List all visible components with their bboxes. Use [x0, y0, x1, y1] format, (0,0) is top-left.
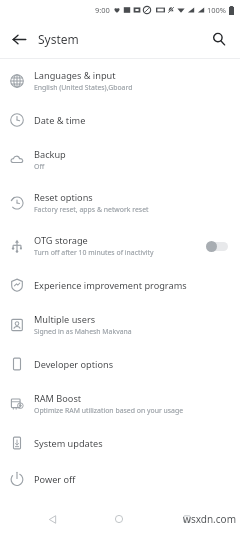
button[interactable]: Developer options	[0, 346, 240, 382]
staticText: Reset options	[34, 191, 93, 204]
staticText: Languages & input	[34, 69, 116, 82]
button[interactable]: OTG storage toggle	[206, 238, 230, 254]
button[interactable]: Experience improvement programs	[0, 267, 240, 303]
button[interactable]: Languages & input	[0, 59, 240, 102]
button[interactable]: Date & time	[0, 102, 240, 138]
button[interactable]: Home	[104, 505, 134, 533]
staticText: System updates	[34, 437, 103, 450]
staticText: English (United States),Gboard	[34, 83, 133, 92]
staticText: Experience improvement programs	[34, 279, 187, 292]
staticText: Optimize RAM utilization based on your u…	[34, 406, 184, 415]
staticText: RAM Boost	[34, 392, 82, 405]
button[interactable]: System updates	[0, 425, 240, 461]
staticText: Date & time	[34, 114, 86, 127]
staticText: Off	[34, 162, 45, 171]
button[interactable]: Recents	[172, 505, 202, 533]
staticText: 9:00	[95, 5, 110, 15]
staticText: OTG storage	[34, 234, 88, 247]
button[interactable]: Search	[206, 26, 232, 52]
button[interactable]: Reset options	[0, 181, 240, 224]
staticText: Power off	[34, 473, 76, 486]
staticText: System	[38, 31, 79, 47]
button[interactable]: Backup	[0, 138, 240, 181]
staticText: Developer options	[34, 358, 114, 371]
staticText: Factory reset, apps & network reset	[34, 205, 149, 214]
button[interactable]: Back	[37, 505, 67, 533]
staticText: Turn off after 10 minutes of inactivity	[34, 248, 154, 257]
staticText: 100%	[207, 5, 227, 15]
staticText: Backup	[34, 148, 66, 161]
button[interactable]: Multiple users	[0, 303, 240, 346]
button[interactable]: Power off	[0, 461, 240, 497]
button[interactable]: Back	[6, 26, 32, 52]
staticText: Multiple users	[34, 313, 96, 326]
button[interactable]: OTG storage	[0, 224, 240, 267]
button[interactable]: RAM Boost	[0, 382, 240, 425]
staticText: wsxdn.com	[183, 512, 236, 526]
staticText: Signed in as Mahesh Makvana	[34, 327, 132, 336]
